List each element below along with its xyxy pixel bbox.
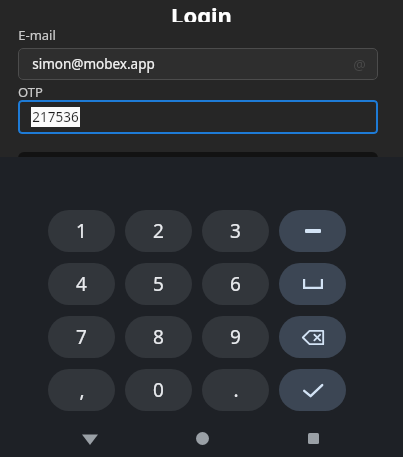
staticText: Login <box>171 0 232 22</box>
staticText: . <box>233 377 239 403</box>
button[interactable]: 9 <box>202 316 269 358</box>
staticText: simon@mobex.app <box>32 55 155 73</box>
button[interactable]: Back <box>68 420 112 457</box>
button[interactable] <box>18 152 378 176</box>
button[interactable]: 7 <box>48 316 115 358</box>
button[interactable]: 217536 <box>18 100 378 134</box>
button[interactable]: 3 <box>202 210 269 252</box>
staticText: 5 <box>153 271 164 297</box>
button[interactable]: 0 <box>125 369 192 411</box>
button[interactable]: 6 <box>202 263 269 305</box>
button[interactable]: 8 <box>125 316 192 358</box>
button[interactable]: Done <box>279 369 346 411</box>
button[interactable]: Home <box>180 420 224 457</box>
staticText: OTP <box>18 83 43 101</box>
button[interactable]: Recent apps <box>291 420 335 457</box>
button[interactable]: 4 <box>48 263 115 305</box>
staticText: 6 <box>230 271 241 297</box>
other: E-mail <box>350 55 368 73</box>
button[interactable]: 5 <box>125 263 192 305</box>
button[interactable]: Backspace <box>279 316 346 358</box>
staticText: 7 <box>76 324 87 350</box>
staticText: 8 <box>153 324 164 350</box>
staticText: , <box>79 377 85 403</box>
button[interactable]: Space <box>279 263 346 305</box>
staticText: 217536 <box>32 108 79 126</box>
button[interactable]: 2 <box>125 210 192 252</box>
staticText: 3 <box>230 218 241 244</box>
staticText: 2 <box>153 218 164 244</box>
staticText: 4 <box>76 271 87 297</box>
staticText: 1 <box>76 218 87 244</box>
staticText: 9 <box>230 324 241 350</box>
button[interactable]: . <box>202 369 269 411</box>
button[interactable]: 1 <box>48 210 115 252</box>
staticText: 0 <box>153 377 164 403</box>
staticText: @ <box>353 55 366 73</box>
button[interactable]: Minus <box>279 210 346 252</box>
button[interactable]: simon@mobex.app <box>18 48 378 80</box>
button[interactable]: , <box>48 369 115 411</box>
staticText: E-mail <box>18 26 56 44</box>
